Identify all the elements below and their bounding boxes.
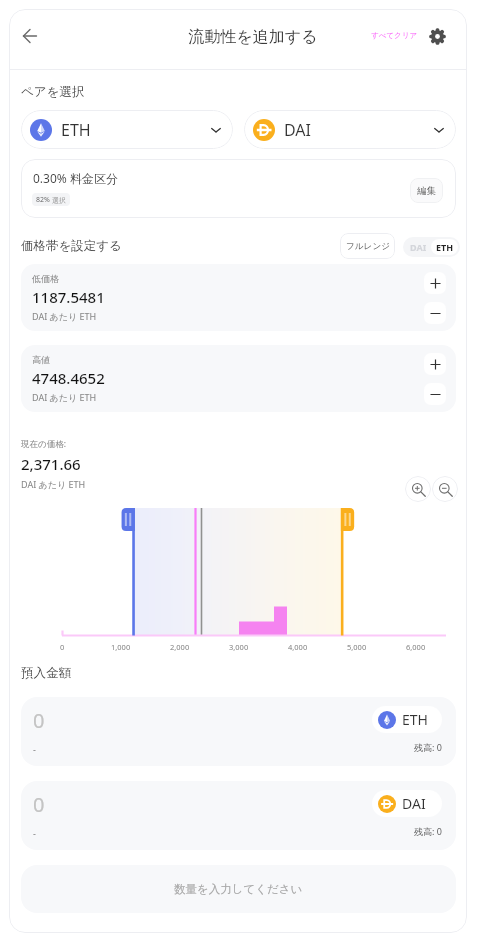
staticText: 高値	[32, 354, 50, 365]
staticText: 82%	[36, 195, 50, 205]
staticText: 価格帯を設定する	[21, 238, 122, 254]
button[interactable]: DAI	[405, 239, 431, 255]
staticText: -	[33, 743, 36, 755]
button[interactable]: Decrease	[424, 302, 446, 324]
staticText: 残高: 0	[414, 741, 442, 753]
staticText: ペアを選択	[21, 84, 85, 100]
staticText: 4,000	[288, 642, 308, 652]
staticText: 0	[33, 791, 45, 818]
button[interactable]: すべてクリア	[366, 26, 423, 45]
staticText: DAI あたり ETH	[32, 391, 97, 403]
button[interactable]: ETH	[372, 706, 442, 733]
button[interactable]: Decrease	[424, 383, 446, 405]
staticText: ETH	[402, 710, 428, 729]
button[interactable]: ETH	[431, 239, 458, 255]
staticText: 低価格	[32, 273, 59, 284]
button[interactable]: DAI	[372, 790, 442, 817]
staticText: ETH	[436, 241, 454, 253]
staticText: すべてクリア	[371, 31, 418, 40]
button[interactable]: Zoom out	[432, 476, 458, 502]
button[interactable]: 編集	[410, 178, 443, 203]
staticText: 0.30% 料金区分	[33, 170, 118, 186]
staticText: 2,371.66	[21, 454, 81, 474]
button[interactable]: ETH	[21, 110, 233, 149]
staticText: 2,000	[170, 642, 190, 652]
staticText: 1,000	[111, 642, 131, 652]
staticText: 0	[33, 707, 45, 734]
button[interactable]: Back	[12, 18, 48, 54]
button[interactable]: Zoom in	[405, 476, 431, 502]
staticText: 3,000	[229, 642, 249, 652]
staticText: DAI あたり ETH	[21, 478, 86, 490]
staticText: 数量を入力してください	[174, 882, 303, 896]
button[interactable]: フルレンジ	[340, 233, 395, 259]
button[interactable]: Increase	[424, 353, 446, 375]
staticText: フルレンジ	[346, 241, 390, 252]
button[interactable]: 0	[21, 697, 456, 766]
staticText: DAI あたり ETH	[32, 310, 97, 322]
staticText: 預入金額	[21, 665, 71, 681]
staticText: 5,000	[347, 642, 367, 652]
button[interactable]: 0.30% 料金区分	[21, 159, 456, 218]
staticText: ETH	[61, 119, 91, 141]
staticText: 流動性を追加する	[188, 27, 318, 47]
staticText: 4748.4652	[32, 368, 105, 388]
staticText: 1187.5481	[32, 287, 105, 307]
staticText: 現在の価格:	[21, 438, 66, 450]
staticText: 編集	[417, 185, 436, 197]
staticText: -	[33, 827, 36, 839]
staticText: DAI	[284, 119, 312, 141]
staticText: 0	[60, 642, 65, 652]
button[interactable]: DAI	[244, 110, 456, 149]
staticText: DAI	[410, 241, 427, 253]
button[interactable]: Settings	[423, 22, 451, 50]
button[interactable]: Increase	[424, 272, 446, 294]
button[interactable]: 0	[21, 781, 456, 850]
button[interactable]: 数量を入力してください	[21, 865, 456, 913]
staticText: 6,000	[406, 642, 426, 652]
staticText: DAI	[402, 794, 426, 813]
staticText: 選択	[52, 196, 66, 205]
staticText: 残高: 0	[414, 825, 442, 837]
